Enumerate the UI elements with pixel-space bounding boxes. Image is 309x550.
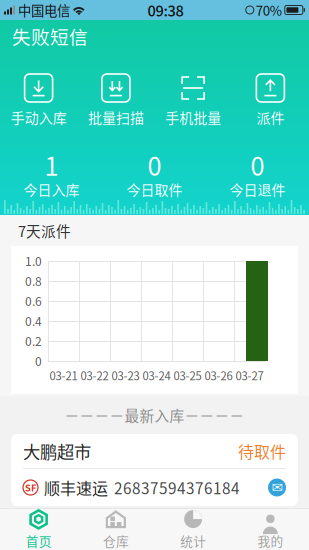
staticText: 统计 — [180, 532, 206, 550]
staticText: 大鹏超市 — [23, 438, 91, 464]
button[interactable]: 派件 — [232, 74, 309, 127]
staticText: 70% — [256, 0, 282, 20]
staticText: 03-27 — [235, 367, 263, 383]
staticText: 手机批量 — [165, 107, 221, 127]
staticText: 03-21 — [49, 367, 77, 383]
staticText: 批量扫描 — [88, 107, 144, 127]
staticText: 今日取件 — [126, 179, 182, 199]
staticText: 首页 — [26, 532, 52, 550]
button[interactable]: 手机批量 — [154, 74, 232, 127]
staticText: 0 — [250, 146, 264, 183]
button[interactable]: 我的 — [232, 505, 309, 550]
staticText: 派件 — [256, 107, 284, 127]
button[interactable]: 仓库 — [77, 505, 154, 550]
staticText: 03-23 — [111, 367, 139, 383]
button[interactable]: 统计 — [154, 505, 232, 550]
staticText: 0 — [147, 146, 161, 183]
staticText: 顺丰速运 — [44, 476, 108, 499]
staticText: 0.2 — [25, 332, 42, 349]
staticText: 仓库 — [103, 532, 129, 550]
staticText: 手动入库 — [11, 107, 67, 127]
staticText: 0.6 — [25, 292, 42, 309]
staticText: 03-24 — [142, 367, 170, 383]
staticText: 今日退件 — [229, 179, 285, 199]
staticText: 03-22 — [80, 367, 108, 383]
staticText: 待取件 — [238, 439, 286, 463]
staticText: 中国电信 — [18, 0, 70, 20]
staticText: ✉ — [271, 480, 282, 495]
staticText: 今日入库 — [23, 179, 79, 199]
staticText: 1 — [44, 146, 58, 183]
staticText: 失败短信 — [12, 22, 88, 49]
staticText: SF — [25, 481, 36, 494]
staticText: 03-25 — [173, 367, 201, 383]
button[interactable]: 手动入库 — [0, 74, 77, 127]
staticText: 0 — [35, 352, 42, 369]
staticText: 0.4 — [25, 312, 42, 329]
button[interactable]: 批量扫描 — [77, 74, 154, 127]
button[interactable]: 首页 — [0, 505, 77, 550]
staticText: 03-26 — [204, 367, 232, 383]
staticText: 7天派件 — [18, 220, 71, 241]
staticText: 26837594376184 — [114, 476, 240, 499]
staticText: 我的 — [257, 532, 283, 550]
staticText: 0.8 — [25, 272, 42, 289]
staticText: 09:38 — [147, 0, 183, 21]
staticText: 1.0 — [25, 252, 42, 269]
staticText: －－－－最新入库－－－－ — [64, 404, 244, 426]
